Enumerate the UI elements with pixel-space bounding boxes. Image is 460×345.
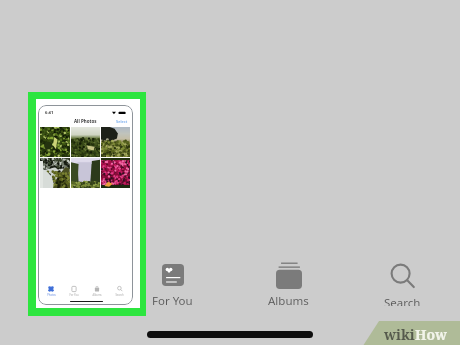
staticText: Search (115, 293, 124, 297)
staticText: Photos (47, 293, 56, 297)
staticText: All Photos (74, 118, 97, 124)
staticText: Select (116, 119, 128, 124)
button[interactable]: Photos (40, 286, 62, 297)
staticText: Search (384, 295, 421, 306)
staticText: Albums (92, 293, 102, 297)
staticText: For You (152, 293, 193, 306)
staticText: For You (69, 293, 79, 297)
staticText: 6:41 (45, 110, 54, 116)
button[interactable]: For You (132, 264, 212, 306)
staticText: wiki (384, 325, 415, 344)
button[interactable]: Albums (248, 262, 328, 306)
button[interactable]: Search (362, 264, 442, 306)
staticText: How (415, 325, 448, 344)
button[interactable]: For You (62, 286, 85, 297)
button[interactable]: Albums (85, 286, 108, 297)
button[interactable]: Search (108, 286, 131, 297)
staticText: Albums (268, 293, 309, 306)
